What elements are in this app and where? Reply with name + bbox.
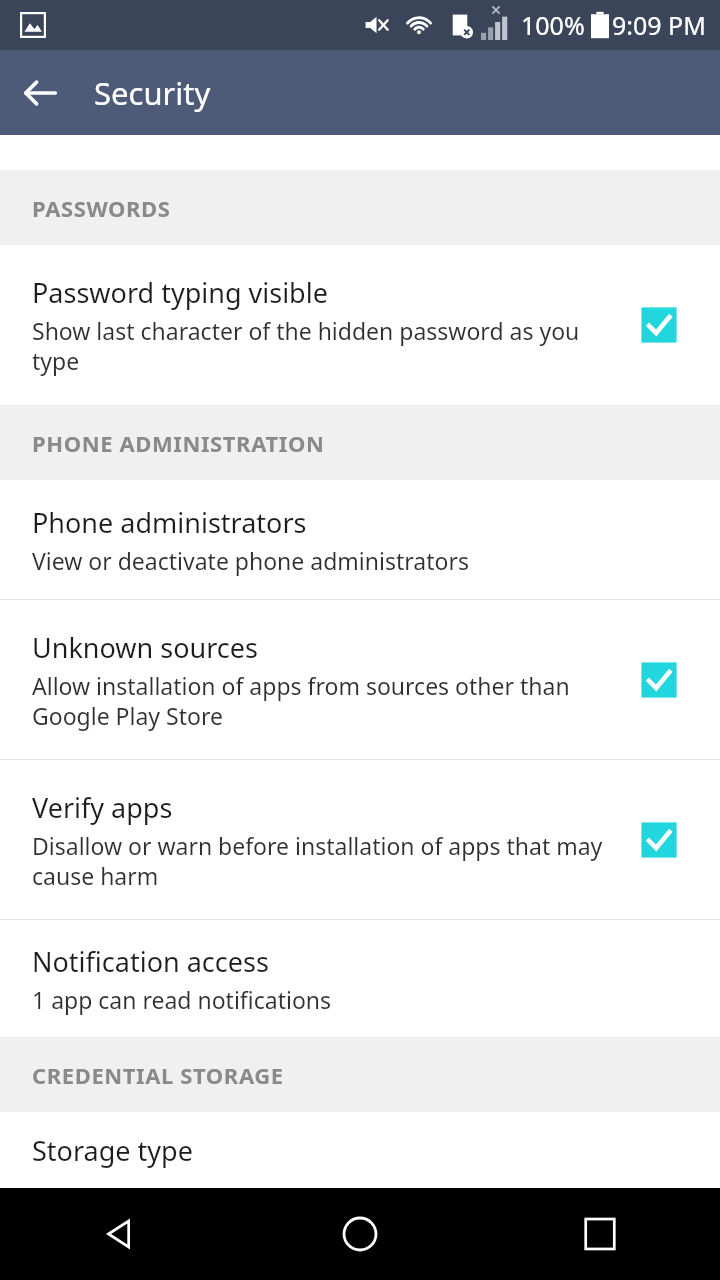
staticText: PASSWORDS [32, 193, 171, 223]
staticText: CREDENTIAL STORAGE [32, 1060, 284, 1090]
staticText: Notification access [32, 943, 269, 980]
staticText: Password typing visible [32, 274, 328, 311]
staticText: Verify apps [32, 789, 173, 826]
button[interactable]: Home [240, 1188, 480, 1280]
staticText: Disallow or warn before installation of … [32, 830, 622, 891]
staticText: 1 app can read notifications [32, 984, 332, 1015]
button[interactable]: Back [8, 61, 72, 125]
button[interactable]: Notification access [0, 920, 720, 1037]
staticText: 100% [521, 8, 585, 42]
button[interactable]: Unknown sources [0, 600, 720, 759]
button[interactable]: Toggle Password typing visible [638, 304, 680, 346]
staticText: Show last character of the hidden passwo… [32, 315, 622, 376]
staticText: Security [94, 72, 211, 114]
button[interactable]: Toggle Unknown sources [638, 659, 680, 701]
button[interactable]: Recent apps [480, 1188, 720, 1280]
button[interactable]: Phone administrators [0, 480, 720, 599]
button[interactable]: Back [0, 1188, 240, 1280]
staticText: Storage type [32, 1132, 193, 1169]
button[interactable]: Toggle Verify apps [638, 819, 680, 861]
staticText: 9:09 PM [612, 8, 706, 42]
staticText: View or deactivate phone administrators [32, 545, 469, 576]
staticText: Phone administrators [32, 504, 307, 541]
staticText: PHONE ADMINISTRATION [32, 428, 325, 458]
button[interactable]: Verify apps [0, 760, 720, 919]
staticText: Unknown sources [32, 629, 258, 666]
button[interactable]: Password typing visible [0, 245, 720, 405]
staticText: Allow installation of apps from sources … [32, 670, 622, 731]
button[interactable]: Storage type [0, 1112, 720, 1188]
